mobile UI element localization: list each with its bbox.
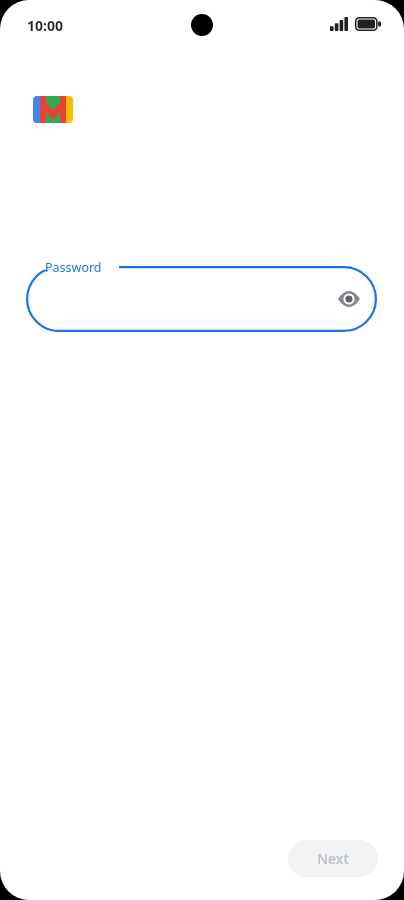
staticText: Password [45, 259, 102, 276]
button[interactable] [26, 266, 377, 332]
button[interactable]: Next [288, 840, 378, 877]
staticText: 10:00 [27, 16, 63, 35]
staticText: Next [317, 849, 349, 868]
button[interactable]: Show password [331, 281, 367, 317]
